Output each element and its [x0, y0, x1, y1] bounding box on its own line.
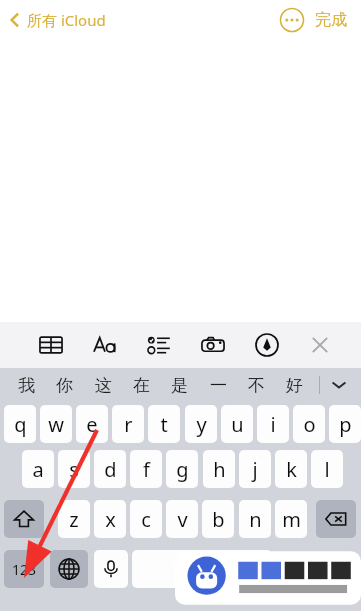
staticText: z: [69, 506, 79, 533]
staticText: e: [86, 411, 98, 438]
button[interactable]: 你: [51, 370, 77, 400]
staticText: i: [270, 411, 276, 438]
staticText: g: [176, 456, 189, 483]
staticText: 完成: [315, 10, 347, 30]
button[interactable]: k: [275, 450, 307, 488]
button[interactable]: p: [329, 405, 361, 443]
staticText: 在: [133, 375, 150, 396]
staticText: a: [32, 456, 44, 483]
button[interactable]: j: [239, 450, 271, 488]
staticText: 这: [95, 375, 112, 396]
button[interactable]: x: [94, 500, 126, 538]
staticText: h: [213, 456, 226, 483]
button[interactable]: 完成: [315, 10, 347, 30]
button[interactable]: Close: [305, 330, 335, 360]
staticText: c: [141, 506, 151, 533]
button[interactable]: 这: [90, 370, 116, 400]
staticText: f: [143, 456, 150, 483]
staticText: x: [105, 506, 116, 533]
staticText: d: [104, 456, 117, 483]
button[interactable]: 在: [128, 370, 154, 400]
staticText: b: [212, 506, 225, 533]
button[interactable]: a: [22, 450, 54, 488]
button[interactable]: i: [257, 405, 289, 443]
button[interactable]: s: [58, 450, 90, 488]
staticText: 所有 iCloud: [27, 10, 106, 30]
staticText: w: [48, 411, 64, 438]
staticText: u: [231, 411, 244, 438]
staticText: q: [14, 411, 27, 438]
button[interactable]: Text format: [90, 330, 120, 360]
button[interactable]: b: [202, 500, 234, 538]
button[interactable]: g: [166, 450, 198, 488]
button[interactable]: 所有 iCloud: [8, 10, 106, 30]
button[interactable]: Camera: [198, 330, 228, 360]
staticText: 123: [12, 560, 37, 579]
staticText: v: [177, 506, 188, 533]
button[interactable]: t: [148, 405, 180, 443]
button[interactable]: Shift: [4, 500, 44, 538]
staticText: m: [282, 506, 301, 533]
staticText: p: [339, 411, 352, 438]
button[interactable]: l: [311, 450, 343, 488]
button[interactable]: v: [166, 500, 198, 538]
button[interactable]: o: [293, 405, 325, 443]
button[interactable]: y: [185, 405, 217, 443]
staticText: y: [196, 411, 207, 438]
button[interactable]: h: [203, 450, 235, 488]
staticText: 我: [18, 375, 35, 396]
staticText: r: [124, 411, 133, 438]
staticText: 不: [248, 375, 265, 396]
staticText: o: [303, 411, 316, 438]
staticText: j: [252, 456, 258, 483]
button[interactable]: m: [275, 500, 307, 538]
button[interactable]: z: [58, 500, 90, 538]
staticText: k: [286, 456, 297, 483]
button[interactable]: f: [130, 450, 162, 488]
button[interactable]: 123: [4, 550, 44, 588]
button[interactable]: Delete: [316, 500, 356, 538]
button[interactable]: Checklist: [144, 330, 174, 360]
button[interactable]: w: [40, 405, 72, 443]
button[interactable]: d: [94, 450, 126, 488]
button[interactable]: Expand suggestions: [326, 370, 352, 400]
button[interactable]: u: [221, 405, 253, 443]
button[interactable]: 我: [13, 370, 39, 400]
button[interactable]: q: [4, 405, 36, 443]
button[interactable]: 好: [281, 370, 307, 400]
button[interactable]: Switch keyboard: [50, 550, 88, 588]
button[interactable]: Markup: [252, 330, 282, 360]
staticText: 是: [171, 375, 188, 396]
button[interactable]: More options: [279, 7, 305, 33]
button[interactable]: r: [112, 405, 144, 443]
button[interactable]: c: [130, 500, 162, 538]
button[interactable]: Dictate: [94, 550, 128, 588]
button[interactable]: Table: [36, 330, 66, 360]
button[interactable]: 一: [205, 370, 231, 400]
staticText: l: [324, 456, 330, 483]
button[interactable]: 是: [166, 370, 192, 400]
button[interactable]: 不: [243, 370, 269, 400]
staticText: 你: [56, 375, 73, 396]
staticText: 一: [210, 375, 227, 396]
staticText: n: [249, 506, 262, 533]
staticText: 好: [286, 375, 303, 396]
staticText: t: [160, 411, 168, 438]
button[interactable]: e: [76, 405, 108, 443]
staticText: s: [69, 456, 79, 483]
button[interactable]: n: [239, 500, 271, 538]
button[interactable]: Space: [132, 550, 272, 588]
